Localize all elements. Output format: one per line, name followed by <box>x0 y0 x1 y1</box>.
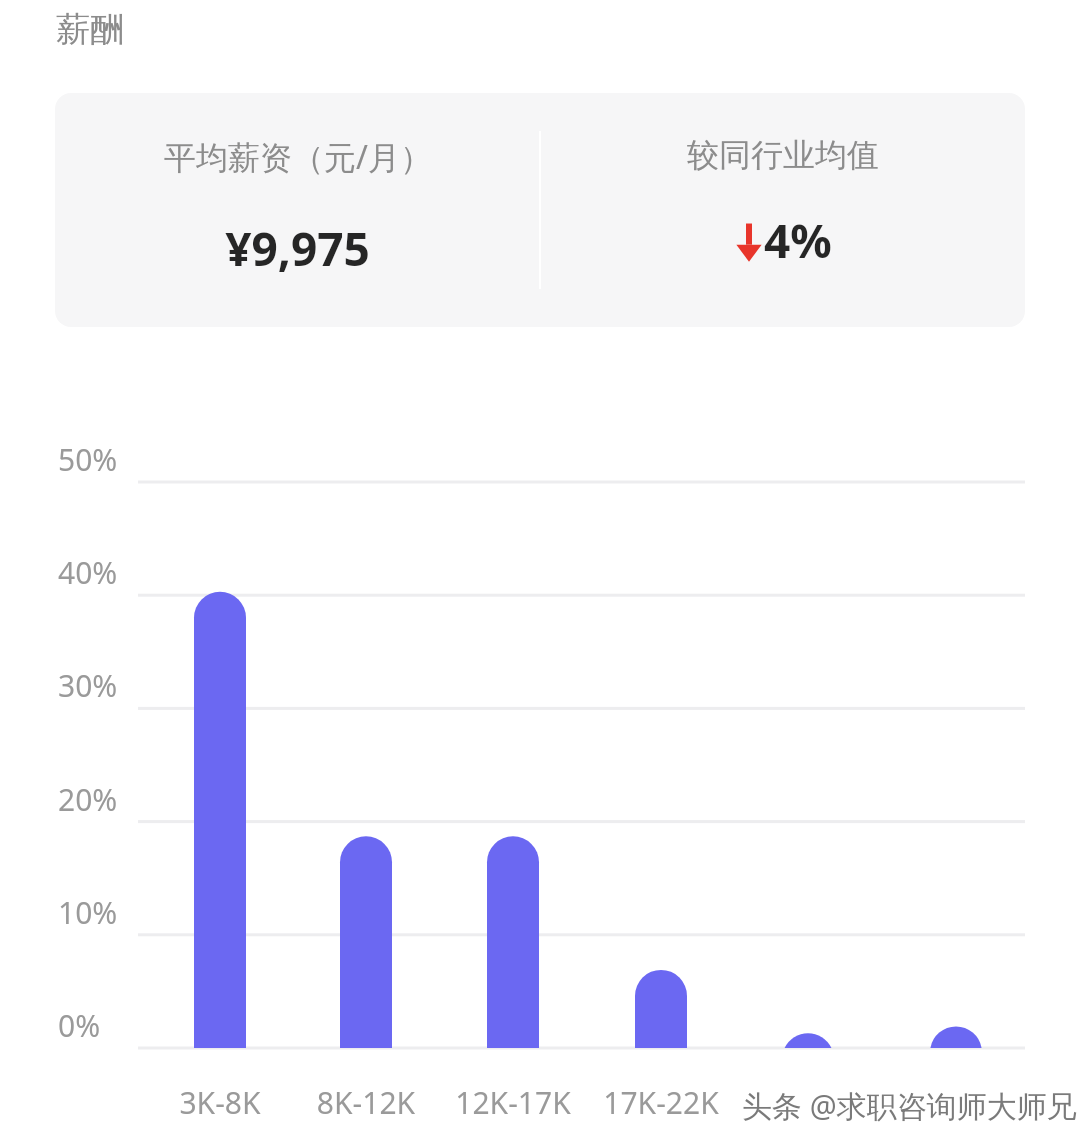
staticText: 10% <box>58 892 118 933</box>
staticText: 4% <box>764 209 832 272</box>
button[interactable]: 平均薪资（元/月） <box>55 93 1025 327</box>
staticText: 8K-12K <box>276 1082 456 1123</box>
staticText: 50% <box>58 439 118 480</box>
staticText: 20% <box>58 779 118 820</box>
staticText: 头条 @求职咨询师大师兄 <box>742 1085 1077 1126</box>
staticText: ¥9,975 <box>225 217 370 280</box>
staticText: 较同行业均值 <box>687 135 879 175</box>
staticText: 0% <box>58 1005 101 1046</box>
staticText: 12K-17K <box>423 1082 603 1123</box>
staticText: 40% <box>58 552 118 593</box>
staticText: 17K-22K <box>571 1082 751 1123</box>
staticText: 薪酬 <box>56 8 124 51</box>
staticText: 30% <box>58 665 118 706</box>
staticText: 平均薪资（元/月） <box>164 135 432 179</box>
staticText: 3K-8K <box>130 1082 310 1123</box>
